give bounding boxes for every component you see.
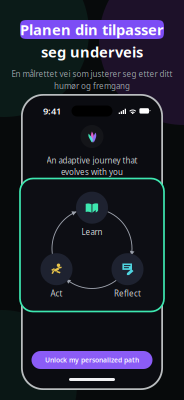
staticText: seg underveis [41,42,143,61]
staticText: 9:41 [43,105,61,117]
staticText: Learn [81,227,102,237]
button[interactable]: Unlock my personalized path [31,351,152,369]
staticText: Act [50,288,62,299]
staticText: Reflect [114,288,141,299]
staticText: En målrettet vei som justerer seg etter … [11,68,172,79]
staticText: Unlock my personalized path [45,356,139,364]
staticText: humør og fremgang [54,81,130,91]
staticText: Planen din tilpasser [20,20,164,39]
staticText: An adaptive journey that [46,155,137,166]
staticText: evolves with you [61,167,123,177]
